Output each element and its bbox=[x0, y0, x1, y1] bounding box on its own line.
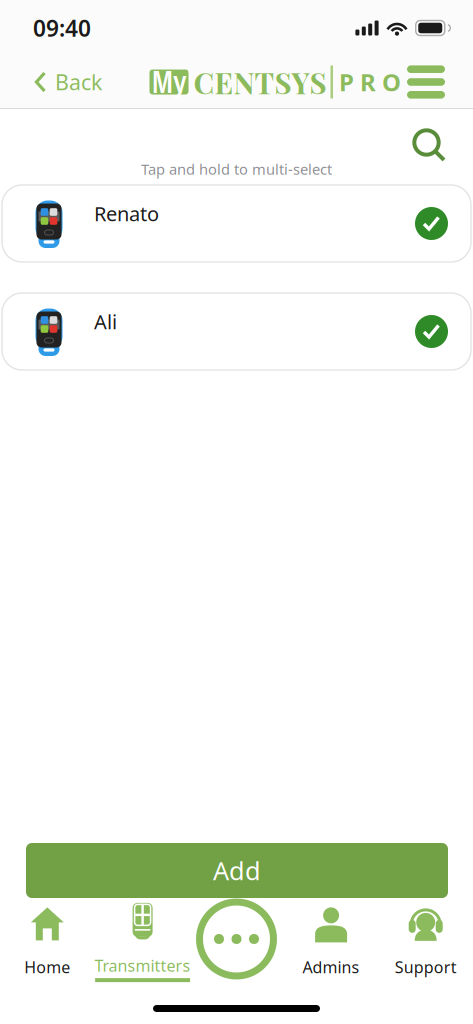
staticText: P R O bbox=[339, 66, 401, 98]
button[interactable]: Search bbox=[412, 128, 446, 162]
staticText: Tap and hold to multi-select bbox=[141, 159, 332, 179]
button[interactable]: Renato bbox=[2, 185, 471, 262]
staticText: Support bbox=[395, 956, 457, 978]
button[interactable]: Add bbox=[26, 843, 448, 898]
staticText: Renato bbox=[94, 200, 159, 227]
button[interactable]: Ali bbox=[2, 293, 471, 370]
staticText: 09:40 bbox=[33, 13, 91, 43]
button[interactable]: Admins bbox=[284, 898, 378, 982]
button[interactable]: Support bbox=[378, 898, 473, 982]
button[interactable]: Home bbox=[0, 898, 95, 982]
staticText: My bbox=[152, 61, 186, 103]
button[interactable]: Back bbox=[0, 58, 116, 106]
staticText: Admins bbox=[303, 956, 360, 978]
button[interactable]: More bbox=[189, 898, 284, 982]
staticText: Back bbox=[55, 68, 102, 96]
staticText: Transmitters bbox=[95, 955, 191, 976]
button[interactable]: Transmitters bbox=[95, 898, 189, 982]
staticText: Add bbox=[213, 854, 261, 887]
staticText: CENTSYS bbox=[193, 62, 326, 101]
button[interactable]: Menu bbox=[407, 65, 445, 98]
staticText: Home bbox=[24, 956, 70, 978]
staticText: Ali bbox=[94, 308, 117, 335]
